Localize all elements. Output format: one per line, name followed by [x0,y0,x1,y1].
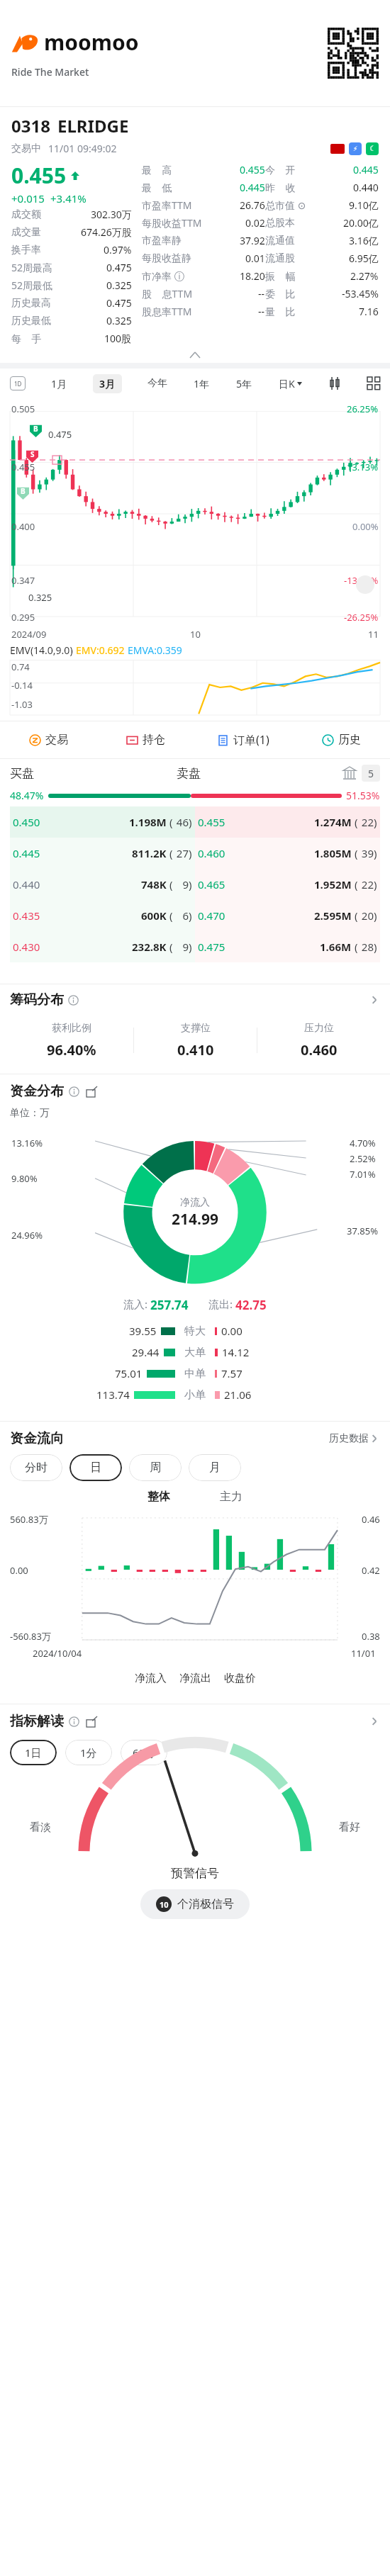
button[interactable]: 日 [69,1454,122,1481]
staticText: 748K [141,877,167,892]
other: Share [87,1716,97,1727]
staticText: 预警信号 [171,1866,219,1881]
button[interactable]: 1日 [10,1740,57,1765]
button[interactable]: 0.435 [13,900,192,931]
staticText: 18.20 [240,269,265,283]
button[interactable]: 1D [10,376,26,390]
button[interactable]: 10 [140,1889,250,1919]
staticText: 收盘价 [224,1672,256,1685]
button[interactable]: 1月 [51,377,67,390]
button[interactable]: Candles [328,377,341,390]
button[interactable]: 5 [362,765,380,782]
button[interactable]: 整体 [147,1490,170,1504]
button[interactable]: 0.445 [13,838,192,869]
button[interactable]: 5年 [236,377,252,390]
staticText: 811.2K [132,846,167,860]
staticText: 资金流向 [10,1430,64,1447]
staticText: EMV:0.692 [76,643,128,657]
button[interactable]: 1分 [65,1740,112,1765]
button[interactable]: 0.470 [198,900,377,931]
button[interactable]: 3月 [93,374,122,393]
staticText: 0.455 [240,163,265,176]
staticText: 股息率TTM [142,305,192,318]
staticText: EMV(14.0,9.0) [10,643,76,657]
staticText: 0.440 [13,877,40,892]
staticText: 0.410 [177,1040,214,1059]
button[interactable]: 0.450 [13,806,192,838]
staticText: 0.440 [353,181,379,194]
button[interactable]: 主力 [220,1490,243,1504]
staticText: 0.455 [11,161,67,190]
button[interactable]: 持仓 [97,721,194,758]
staticText: 订单(1) [233,732,269,748]
button[interactable]: 0.440 [13,869,192,900]
staticText: 日K [279,377,295,390]
staticText: 52周最高 [11,261,53,274]
staticText: 0.460 [198,846,225,860]
staticText: 压力位 [304,1022,334,1035]
button[interactable]: 周 [129,1454,182,1481]
staticText: +3.41% [50,191,87,206]
button[interactable]: 0.465 [198,869,377,900]
staticText: 交易中 [11,142,41,155]
staticText: 600K [141,909,167,923]
staticText: 214.99 [172,1209,218,1230]
staticText: 1.952M [314,877,352,892]
staticText: 0.46 [362,1513,380,1526]
staticText: 3月 [99,377,116,390]
button[interactable]: 今年 [147,377,167,390]
button[interactable]: 历史 [292,721,390,758]
staticText: 1D [14,380,22,388]
button[interactable]: More [367,377,380,390]
button[interactable]: 60分 [121,1740,167,1765]
staticText: 96.40% [47,1040,96,1059]
staticText: 净流入 [180,1196,210,1209]
staticText: 历史 [338,733,361,747]
staticText: 0.400 [11,520,35,533]
staticText: 0.475 [106,261,132,274]
staticText: 历史最高 [11,297,51,310]
staticText: 持仓 [143,733,165,747]
button[interactable]: 1年 [194,377,210,390]
button[interactable]: Broker [343,767,356,780]
staticText: 6.95亿 [349,252,379,265]
staticText: 资金分布 [10,1083,64,1100]
button[interactable]: 历史数据 [329,1432,380,1445]
staticText: 个消极信号 [177,1897,234,1911]
staticText: 0.445 [13,846,40,860]
staticText: 昨 收 [265,181,296,194]
button[interactable]: 分时 [10,1454,62,1481]
staticText: 看好 [339,1821,360,1834]
staticText: S [30,449,35,459]
button[interactable]: Share [87,1716,97,1727]
button[interactable]: 月 [189,1454,241,1481]
staticText: 0.325 [106,279,132,292]
staticText: 39.55 [129,1324,157,1338]
staticText: 0.455 [198,815,225,829]
button[interactable]: 0.475 [198,931,377,962]
button[interactable]: 0.430 [13,931,192,962]
staticText: 0.470 [198,909,225,923]
staticText: 0.445 [353,163,379,176]
button[interactable]: 日K [279,377,302,390]
button[interactable]: 交易 [0,721,97,758]
staticText: 看淡 [30,1821,51,1834]
staticText: 委 比 [265,287,296,300]
staticText: 0318 [11,114,50,137]
button[interactable]: 0.455 [198,806,377,838]
button[interactable]: 0.460 [198,838,377,869]
staticText: 分时 [25,1461,48,1475]
button[interactable]: 筹码分布 [10,991,380,1008]
staticText: 232.8K [132,940,167,954]
staticText: 特大 [184,1324,206,1338]
staticText: 净流出 [179,1672,211,1685]
staticText: 42.75 [235,1297,267,1313]
staticText: 指标解读 [10,1713,64,1730]
staticText: 4.70% [350,1137,376,1149]
staticText: Ride The Market [11,65,89,79]
button[interactable]: 订单(1) [194,721,292,758]
staticText: B [33,424,38,434]
staticText: ) [189,815,192,829]
staticText: 11/01 09:49:02 [48,142,117,155]
button[interactable]: Share [87,1086,97,1097]
